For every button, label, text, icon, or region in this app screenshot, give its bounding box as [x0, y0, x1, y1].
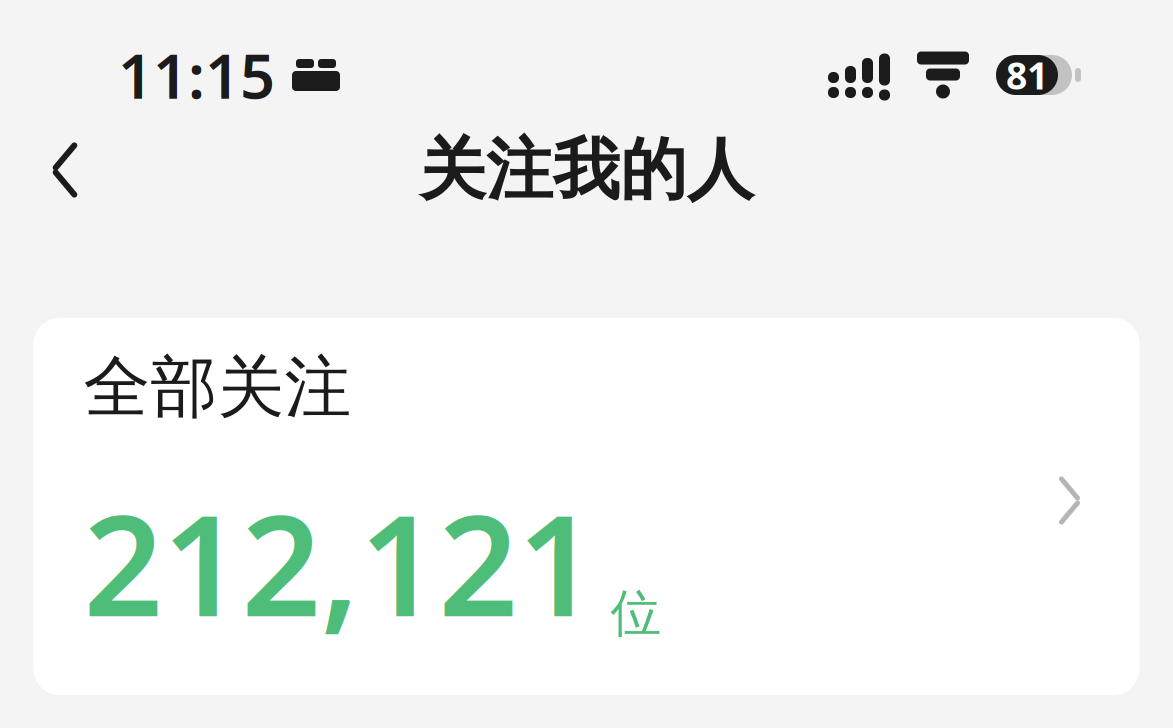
staticText: 81: [1006, 50, 1048, 100]
staticText: 11:15: [118, 34, 275, 116]
button[interactable]: 返回: [20, 125, 110, 215]
staticText: 212,121: [83, 470, 596, 654]
staticText: 全部关注: [83, 346, 351, 428]
staticText: 位: [610, 582, 661, 644]
button[interactable]: 全部关注: [33, 318, 1139, 695]
staticText: 关注我的人: [419, 129, 754, 211]
